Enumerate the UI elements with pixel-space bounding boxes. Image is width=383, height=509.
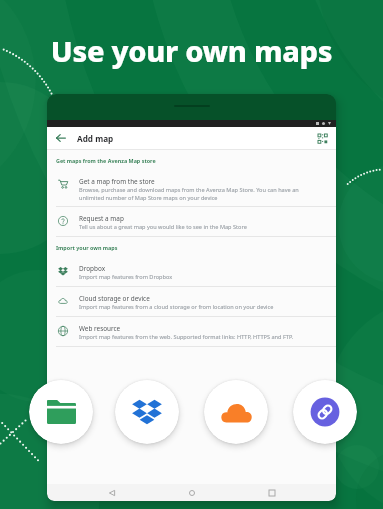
button[interactable]: Request a map — [47, 207, 336, 236]
button[interactable]: Cloud storage or device — [47, 287, 336, 316]
staticText: Dropbox — [79, 264, 106, 273]
button[interactable]: Cloud storage — [204, 380, 268, 444]
button[interactable]: Dropbox — [47, 257, 336, 286]
button[interactable]: Web link — [293, 380, 357, 444]
staticText: Tell us about a great map you would like… — [79, 223, 247, 231]
staticText: Import your own maps — [56, 244, 118, 251]
staticText: Request a map — [79, 214, 124, 223]
button[interactable]: Get a map from the store — [47, 170, 336, 206]
staticText: Cloud storage or device — [79, 294, 150, 303]
staticText: Add map — [77, 133, 114, 144]
staticText: Get maps from the Avenza Map store — [56, 157, 156, 164]
button[interactable]: Dropbox — [115, 380, 179, 444]
staticText: Web resource — [79, 324, 121, 333]
staticText: Import map features from the web. Suppor… — [79, 333, 294, 341]
staticText: Get a map from the store — [79, 177, 155, 186]
staticText: Import map features from Dropbox — [79, 273, 173, 281]
button[interactable]: Back — [52, 129, 70, 147]
staticText: Import map features from a cloud storage… — [79, 303, 274, 311]
button[interactable]: Back — [105, 486, 118, 499]
button[interactable]: Device folder — [29, 380, 93, 444]
button[interactable]: Recent apps — [265, 486, 278, 499]
button[interactable]: Scan QR code — [313, 129, 331, 147]
staticText: Use your own maps — [0, 31, 383, 70]
button[interactable]: Home — [185, 486, 198, 499]
staticText: Browse, purchase and download maps from … — [79, 186, 324, 201]
button[interactable]: Web resource — [47, 317, 336, 346]
